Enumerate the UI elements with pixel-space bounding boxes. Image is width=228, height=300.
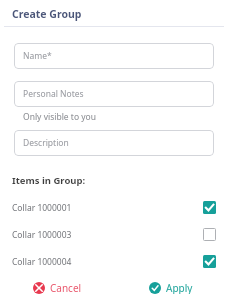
button[interactable]: Checked xyxy=(203,201,216,214)
button[interactable]: Checked xyxy=(203,255,216,268)
button[interactable]: Personal Notes xyxy=(14,81,214,107)
button[interactable]: Cancel xyxy=(0,275,114,300)
button[interactable]: Collar 1000004 xyxy=(0,248,228,275)
button[interactable]: Name* xyxy=(14,43,214,69)
staticText: Name* xyxy=(23,50,52,62)
button[interactable]: Apply xyxy=(114,275,228,300)
staticText: Description xyxy=(23,137,69,149)
staticText: Apply xyxy=(166,281,193,294)
staticText: Collar 1000001 xyxy=(12,202,203,214)
staticText: Create Group xyxy=(12,7,82,21)
button[interactable]: Collar 1000001 xyxy=(0,194,228,221)
staticText: Only visible to you xyxy=(23,111,96,123)
staticText: Items in Group: xyxy=(12,174,86,187)
button[interactable]: Description xyxy=(14,130,214,156)
button[interactable]: Unchecked xyxy=(203,228,216,241)
staticText: Collar 1000003 xyxy=(12,229,203,241)
staticText: Collar 1000004 xyxy=(12,256,203,268)
staticText: Cancel xyxy=(50,281,82,294)
button[interactable]: Collar 1000003 xyxy=(0,221,228,248)
staticText: Personal Notes xyxy=(23,88,84,100)
